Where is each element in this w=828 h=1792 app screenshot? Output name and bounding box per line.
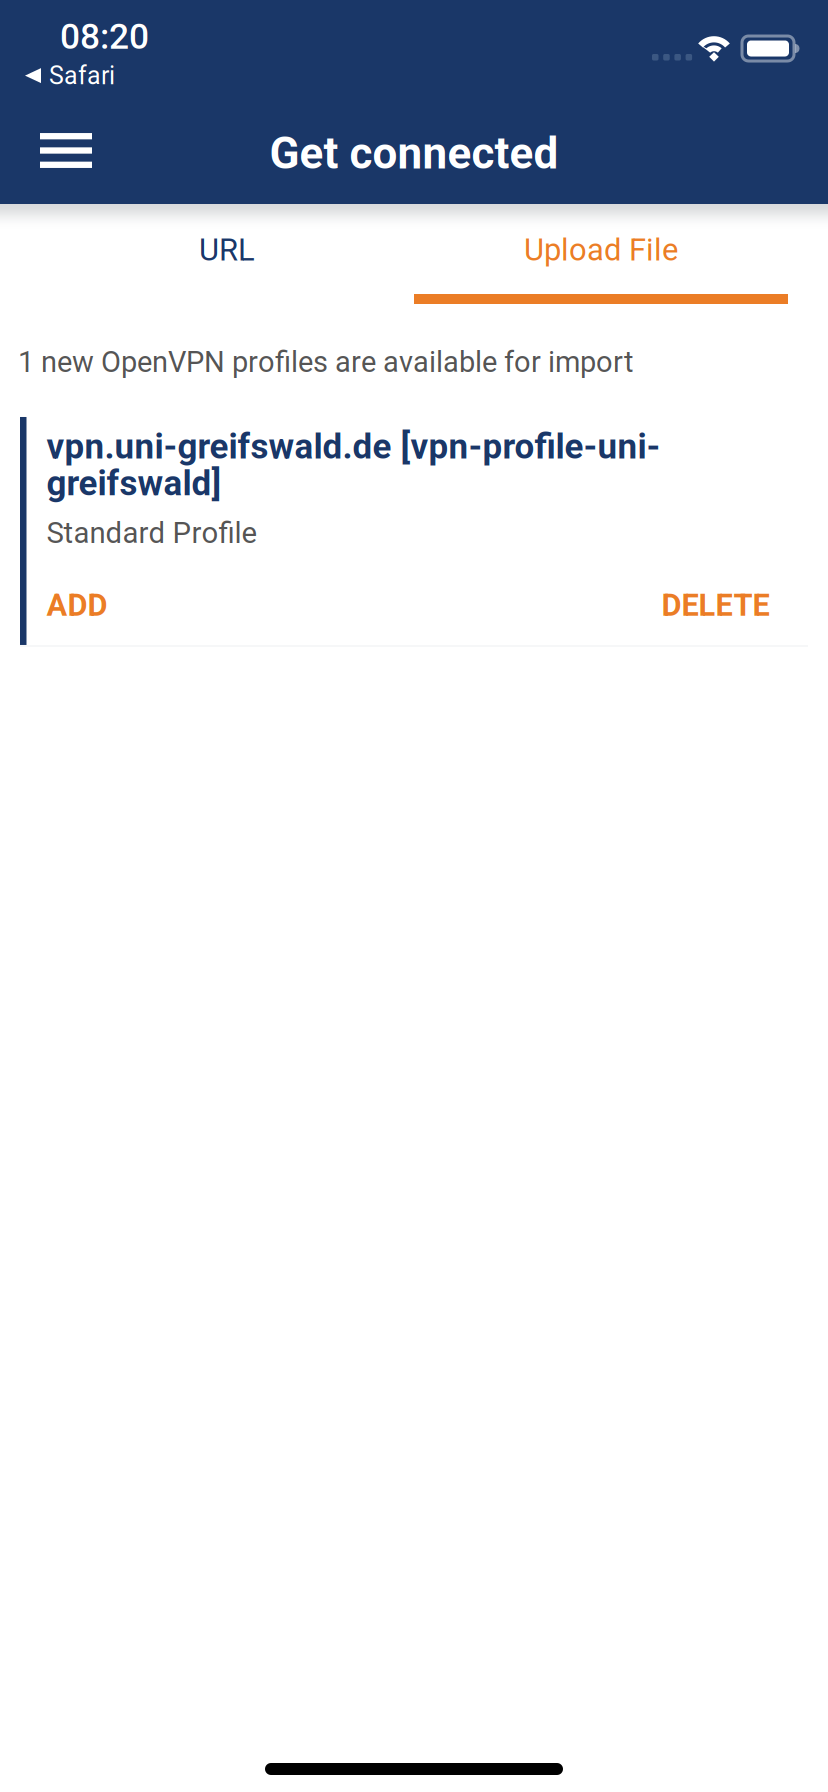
- button[interactable]: DELETE: [631, 570, 769, 640]
- staticText: vpn.uni-greifswald.de [vpn-profile-uni-g…: [46, 426, 660, 504]
- staticText: Get connected: [269, 128, 558, 179]
- button[interactable]: Upload File: [414, 204, 788, 304]
- button[interactable]: ADD: [46, 570, 137, 640]
- staticText: 08:20: [60, 16, 149, 57]
- staticText: 1 new OpenVPN profiles are available for…: [18, 345, 633, 379]
- button[interactable]: Menu: [0, 103, 116, 204]
- staticText: Safari: [49, 61, 115, 90]
- staticText: DELETE: [661, 587, 769, 623]
- staticText: ADD: [46, 587, 107, 623]
- button[interactable]: Safari: [0, 55, 135, 96]
- button[interactable]: URL: [40, 204, 414, 304]
- staticText: URL: [199, 232, 255, 268]
- staticText: Upload File: [524, 232, 678, 268]
- staticText: Standard Profile: [46, 516, 257, 550]
